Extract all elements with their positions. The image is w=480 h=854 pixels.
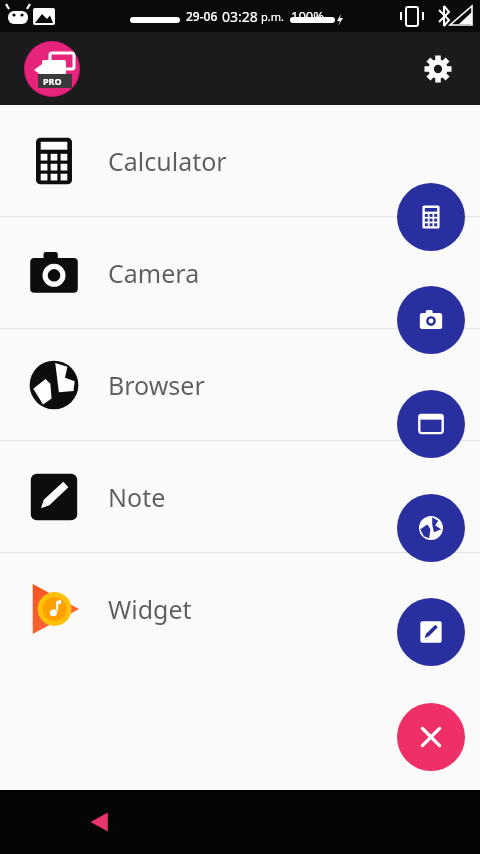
- button[interactable]: Note: [397, 598, 465, 666]
- staticText: Widget: [108, 592, 192, 626]
- staticText: PRO: [43, 75, 62, 87]
- button[interactable]: Screenshot: [397, 390, 465, 458]
- button[interactable]: Back: [78, 800, 122, 844]
- staticText: 03:28: [222, 7, 258, 26]
- button[interactable]: Settings: [414, 45, 462, 93]
- button[interactable]: Browser: [0, 329, 480, 440]
- button[interactable]: Camera: [0, 217, 480, 328]
- button[interactable]: Widget: [0, 553, 480, 665]
- button[interactable]: Browser: [397, 494, 465, 562]
- button[interactable]: Calculator: [397, 183, 465, 251]
- staticText: Calculator: [108, 144, 227, 178]
- button[interactable]: App logo: [24, 41, 80, 97]
- button[interactable]: Calculator: [0, 105, 480, 216]
- staticText: 100%: [291, 7, 325, 25]
- staticText: Browser: [108, 368, 205, 402]
- button[interactable]: Note: [0, 441, 480, 552]
- staticText: p.m.: [261, 9, 284, 24]
- staticText: Camera: [108, 256, 200, 290]
- staticText: 29-06: [186, 8, 218, 24]
- button[interactable]: Camera: [397, 286, 465, 354]
- staticText: Note: [108, 480, 166, 514]
- button[interactable]: Close: [397, 703, 465, 771]
